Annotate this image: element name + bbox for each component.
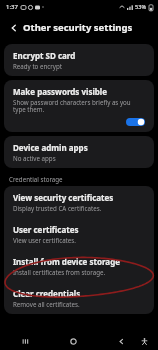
button[interactable]: Back — [110, 332, 132, 350]
staticText: 53% — [135, 3, 147, 11]
button[interactable]: Home — [62, 332, 84, 350]
staticText: Credential storage — [9, 175, 63, 183]
staticText: Ready to encrypt — [13, 62, 62, 70]
staticText: Encrypt SD card — [13, 50, 76, 61]
button[interactable]: Encrypt SD card — [4, 44, 154, 76]
staticText: View security certificates — [13, 192, 114, 203]
staticText: Device admin apps — [13, 142, 88, 153]
staticText: View user certificates. — [13, 236, 76, 244]
button[interactable]: Make passwords visible — [4, 80, 154, 132]
button[interactable]: View security certificates — [4, 186, 154, 218]
button[interactable]: User certificates — [4, 218, 154, 250]
staticText: Other security settings — [23, 21, 133, 34]
staticText: 1:37 — [6, 3, 18, 11]
staticText: Show password characters briefly as you … — [13, 98, 131, 114]
staticText: Remove all certificates. — [13, 300, 80, 308]
staticText: Install certificates from storage. — [13, 268, 106, 276]
staticText: Make passwords visible — [13, 86, 108, 97]
staticText: No active apps — [13, 154, 56, 162]
staticText: Display trusted CA certificates. — [13, 204, 102, 212]
button[interactable]: Make passwords visible toggle — [126, 117, 145, 127]
button[interactable]: Device admin apps — [4, 136, 154, 168]
button[interactable]: Install from device storage — [4, 250, 154, 282]
staticText: User certificates — [13, 224, 79, 235]
staticText: Clear credentials — [13, 288, 81, 299]
button[interactable]: Clear credentials — [4, 282, 154, 314]
button[interactable]: Recent apps — [14, 332, 36, 350]
staticText: Install from device storage — [13, 256, 120, 267]
button[interactable]: Navigate up — [6, 20, 21, 35]
button[interactable]: Accessibility — [136, 333, 152, 349]
